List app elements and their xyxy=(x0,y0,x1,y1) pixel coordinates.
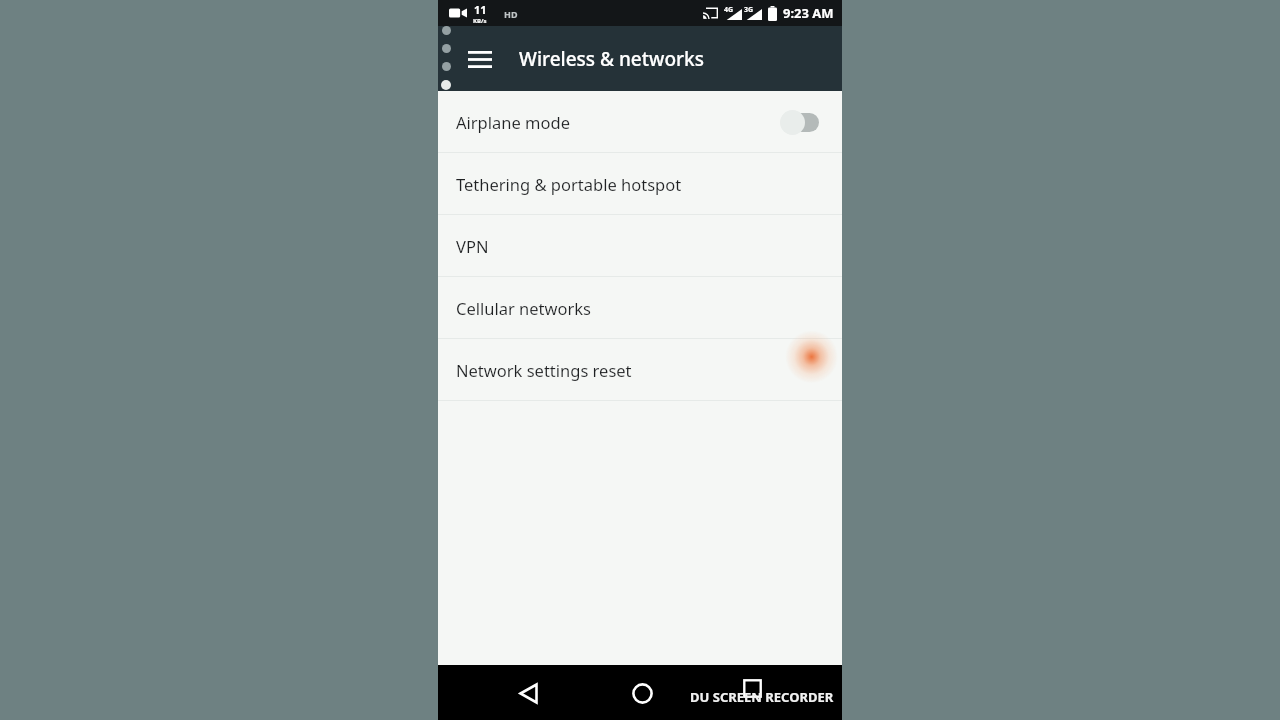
staticText: KB/s xyxy=(473,17,487,25)
staticText: VPN xyxy=(456,235,489,257)
button[interactable]: Network settings reset xyxy=(438,339,842,400)
staticText: 11 xyxy=(474,2,487,17)
button[interactable]: Airplane mode xyxy=(438,91,842,152)
staticText: Network settings reset xyxy=(456,359,632,381)
button[interactable]: VPN xyxy=(438,215,842,276)
staticText: Cellular networks xyxy=(456,297,592,319)
staticText: DU SCREEN RECORDER xyxy=(690,688,834,706)
staticText: HD xyxy=(504,8,518,20)
staticText: 3G xyxy=(744,5,754,15)
button[interactable]: Back xyxy=(504,669,552,717)
button[interactable]: Tethering & portable hotspot xyxy=(438,153,842,214)
button[interactable]: Home xyxy=(618,669,666,717)
button[interactable]: Airplane mode, off xyxy=(780,109,826,135)
staticText: Tethering & portable hotspot xyxy=(456,173,682,195)
staticText: Airplane mode xyxy=(456,111,570,133)
staticText: Wireless & networks xyxy=(519,46,704,72)
button[interactable]: Recent apps xyxy=(728,664,776,712)
button[interactable]: Open navigation menu xyxy=(456,35,504,83)
button[interactable]: Cellular networks xyxy=(438,277,842,338)
staticText: 9:23 AM xyxy=(783,4,834,22)
staticText: 4G xyxy=(724,5,734,15)
